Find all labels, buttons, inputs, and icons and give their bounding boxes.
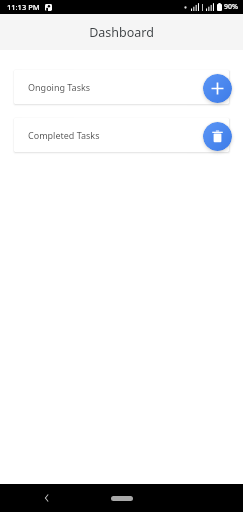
button[interactable]: Completed Tasks bbox=[14, 118, 229, 152]
button[interactable]: Back bbox=[38, 489, 56, 507]
button[interactable]: Add task bbox=[203, 74, 232, 103]
staticText: 90% bbox=[224, 2, 238, 12]
staticText: Ongoing Tasks bbox=[28, 81, 91, 93]
staticText: Completed Tasks bbox=[28, 129, 100, 141]
staticText: 11:13 PM bbox=[7, 2, 40, 12]
button[interactable]: Ongoing Tasks bbox=[14, 70, 229, 104]
staticText: Dashboard bbox=[89, 24, 154, 41]
button[interactable]: Home bbox=[102, 490, 142, 506]
button[interactable]: Delete completed tasks bbox=[203, 122, 232, 151]
